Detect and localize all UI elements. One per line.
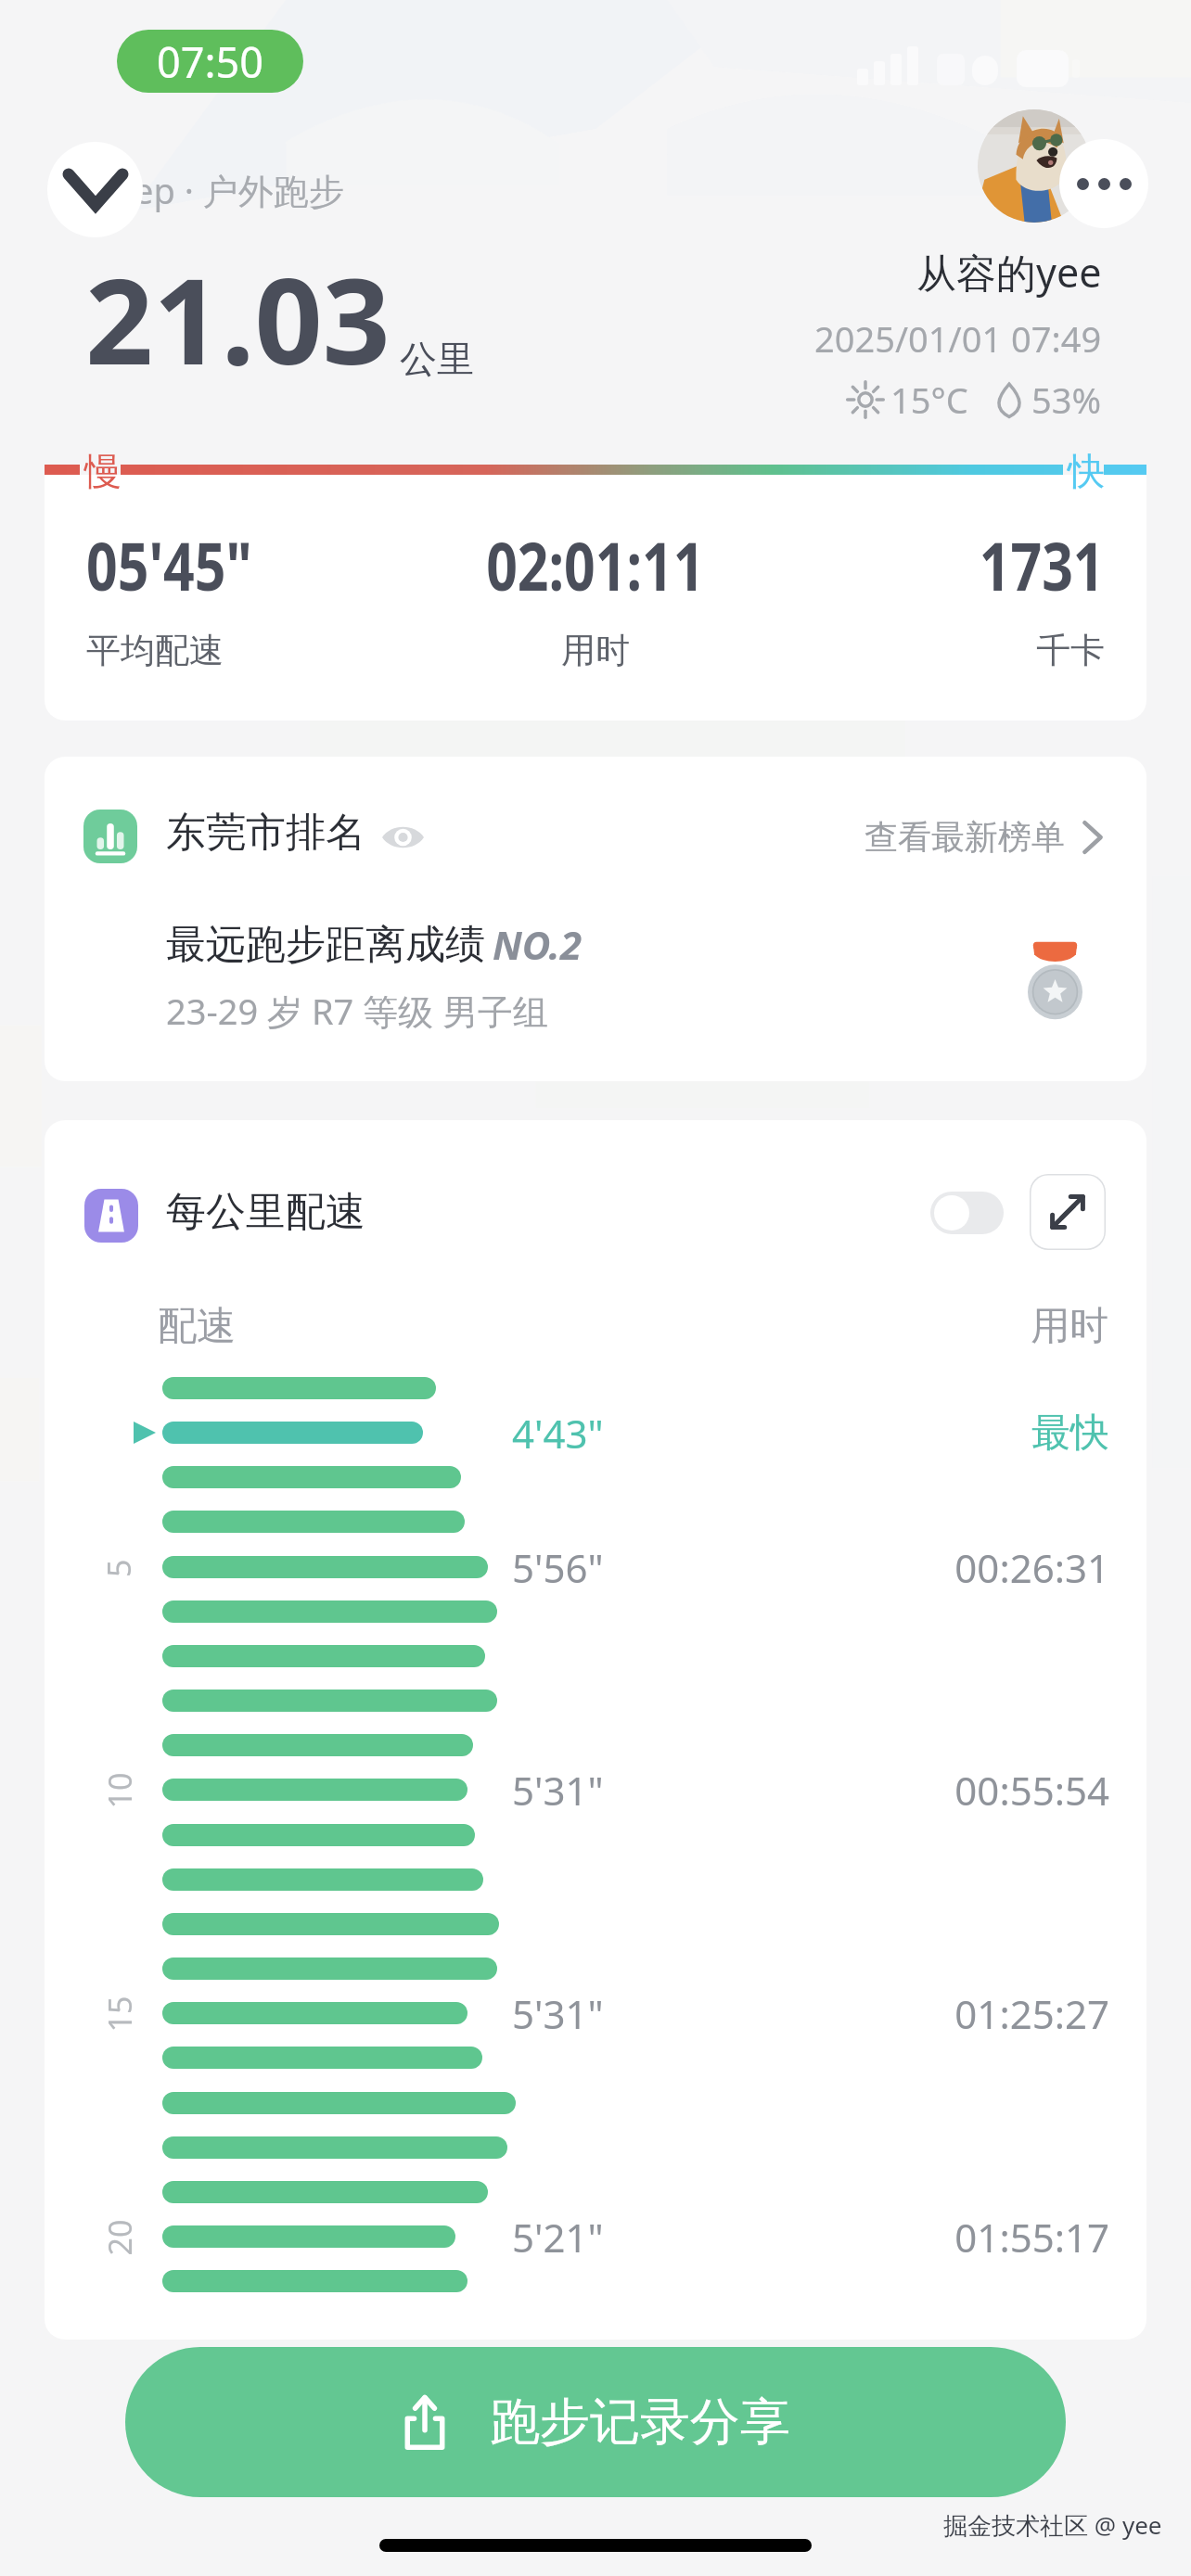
button[interactable]: More options — [1059, 139, 1148, 228]
button[interactable]: Toggle chart — [930, 1192, 1004, 1234]
staticText: 5'21" — [512, 2211, 604, 2263]
staticText: 快 — [1068, 448, 1105, 494]
staticText: Keep · 户外跑步 — [92, 166, 344, 214]
staticText: 千卡 — [1036, 629, 1105, 672]
staticText: 00:26:31 — [954, 1541, 1109, 1593]
staticText: 5 — [97, 1559, 140, 1577]
staticText: 07:50 — [157, 33, 264, 90]
staticText: 01:55:17 — [954, 2211, 1109, 2263]
staticText: NO.2 — [493, 918, 583, 971]
button[interactable]: 东莞市排名 — [45, 757, 1146, 1081]
staticText: 01:25:27 — [954, 1987, 1109, 2039]
staticText: 跑步记录分享 — [490, 2391, 790, 2454]
staticText: 5'31" — [512, 1764, 604, 1816]
staticText: 平均配速 — [86, 629, 224, 672]
staticText: 15°C — [890, 376, 968, 424]
staticText: 从容的yee — [916, 245, 1102, 300]
button[interactable]: Collapse — [47, 142, 143, 237]
staticText: 东莞市排名 — [166, 808, 365, 858]
staticText: 5'56" — [512, 1541, 604, 1593]
staticText: 用时 — [1031, 1302, 1108, 1351]
staticText: 每公里配速 — [166, 1187, 365, 1237]
staticText: 10 — [98, 1773, 141, 1809]
staticText: 用时 — [561, 629, 630, 672]
staticText: 20 — [98, 2219, 141, 2256]
staticText: 5'31" — [512, 1987, 604, 2039]
staticText: 05'45" — [86, 520, 253, 610]
staticText: 00:55:54 — [954, 1764, 1109, 1816]
staticText: 23-29 岁 R7 等级 男子组 — [166, 987, 549, 1035]
staticText: 查看最新榜单 — [864, 816, 1065, 858]
staticText: 公里 — [400, 336, 474, 382]
staticText: 最快 — [1031, 1409, 1109, 1458]
button[interactable]: Profile — [978, 109, 1091, 223]
staticText: 2025/01/01 07:49 — [814, 314, 1102, 363]
staticText: 配速 — [158, 1302, 236, 1351]
staticText: 1731 — [979, 520, 1105, 610]
staticText: 4'43" — [512, 1407, 604, 1459]
staticText: 53% — [1031, 376, 1102, 424]
staticText: 最远跑步距离成绩 — [166, 920, 485, 970]
button[interactable]: Expand chart — [1030, 1174, 1106, 1250]
button[interactable]: 跑步记录分享 — [125, 2347, 1066, 2497]
staticText: 15 — [98, 1996, 141, 2032]
staticText: 21.03 — [85, 237, 391, 399]
staticText: 掘金技术社区 @ yee — [943, 2508, 1162, 2542]
staticText: 慢 — [84, 448, 122, 494]
staticText: 02:01:11 — [486, 520, 705, 610]
